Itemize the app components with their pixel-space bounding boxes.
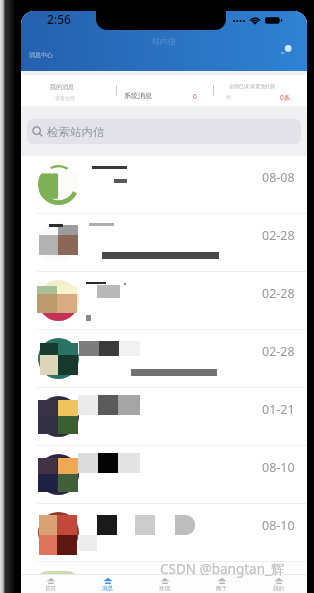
- staticText: 0: [193, 92, 197, 101]
- button[interactable]: 02-28: [21, 330, 307, 387]
- button[interactable]: 系统消息: [117, 75, 212, 106]
- staticText: 共: [226, 94, 231, 100]
- button[interactable]: 发现: [136, 575, 193, 593]
- staticText: 2:56: [47, 11, 71, 27]
- staticText: 我的消息: [50, 83, 74, 91]
- staticText: 发现: [159, 585, 170, 592]
- button[interactable]: 02-28: [21, 214, 307, 271]
- button[interactable]: 02-28: [21, 272, 307, 329]
- staticText: 02-28: [262, 227, 295, 244]
- staticText: 全部已读 设置免打扰: [229, 83, 276, 90]
- staticText: 站内信: [152, 36, 176, 46]
- button[interactable]: 08-10: [21, 504, 307, 561]
- button[interactable]: 圈子: [193, 575, 250, 593]
- staticText: 08-10: [262, 517, 295, 534]
- button[interactable]: 我的: [250, 575, 307, 593]
- staticText: 08-10: [262, 459, 295, 476]
- button[interactable]: 消息: [79, 575, 136, 593]
- staticText: 检索站内信: [47, 125, 105, 139]
- staticText: 我的: [273, 585, 284, 592]
- staticText: 01-21: [262, 401, 295, 418]
- button[interactable]: More options: [277, 39, 297, 59]
- staticText: 02-28: [262, 285, 295, 302]
- staticText: 圈子: [216, 585, 227, 592]
- staticText: 首页: [45, 585, 56, 592]
- staticText: 消息中心: [29, 51, 53, 59]
- staticText: 0条: [280, 93, 291, 102]
- button[interactable]: 首页: [21, 575, 79, 593]
- staticText: 系统消息: [124, 91, 152, 100]
- staticText: 08-08: [262, 169, 295, 186]
- staticText: 02-28: [262, 343, 295, 360]
- staticText: CSDN @bangtan_辉: [160, 560, 285, 578]
- button[interactable]: 08-10: [21, 446, 307, 503]
- staticText: 消息: [102, 585, 113, 592]
- button[interactable]: 检索站内信: [27, 119, 301, 144]
- button[interactable]: 全部已读 设置免打扰: [214, 75, 307, 106]
- button[interactable]: 08-08: [21, 156, 307, 213]
- staticText: 查看全部: [55, 95, 75, 101]
- button[interactable]: 我的消息: [21, 75, 116, 106]
- button[interactable]: 01-21: [21, 388, 307, 445]
